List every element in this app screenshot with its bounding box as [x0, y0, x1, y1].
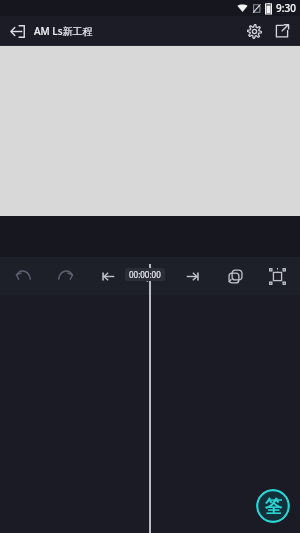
button[interactable]: Back: [6, 20, 28, 42]
staticText: 筌: [265, 496, 282, 517]
button[interactable]: Skip to end: [175, 259, 209, 293]
button[interactable]: Redo: [48, 259, 82, 293]
button[interactable]: Export: [268, 17, 296, 45]
staticText: AM Ls新工程: [34, 24, 93, 38]
button[interactable]: Transform: [260, 259, 294, 293]
staticText: 9:30: [276, 1, 296, 15]
button[interactable]: Settings: [240, 17, 268, 45]
button[interactable]: Duplicate: [218, 259, 252, 293]
staticText: 00:00:00: [129, 269, 161, 280]
button[interactable]: App watermark: [256, 489, 290, 523]
button[interactable]: Play: [133, 259, 167, 293]
button[interactable]: Skip to start: [91, 259, 125, 293]
button[interactable]: Undo: [6, 259, 40, 293]
